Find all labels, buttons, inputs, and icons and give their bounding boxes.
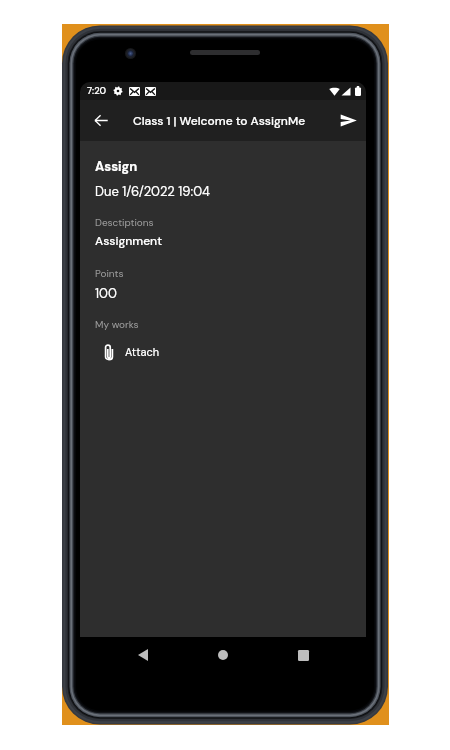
staticText: Due 1/6/2022 19:04 — [95, 183, 210, 200]
staticText: My works — [95, 318, 139, 331]
staticText: 7:20 — [87, 85, 107, 97]
button[interactable]: Navigate up — [84, 100, 117, 141]
staticText: Points — [95, 267, 124, 280]
staticText: Assign — [95, 158, 138, 175]
button[interactable]: Send — [331, 100, 366, 141]
staticText: Assignment — [95, 233, 163, 249]
button[interactable]: Back — [126, 637, 160, 673]
staticText: Attach — [125, 345, 160, 359]
staticText: Class 1 | Welcome to AssignMe — [133, 113, 306, 129]
button[interactable]: Recent apps — [286, 637, 320, 673]
staticText: Desctiptions — [95, 216, 154, 229]
button[interactable]: Home — [206, 637, 240, 673]
button[interactable]: Attach — [80, 339, 366, 365]
staticText: 100 — [95, 285, 117, 302]
